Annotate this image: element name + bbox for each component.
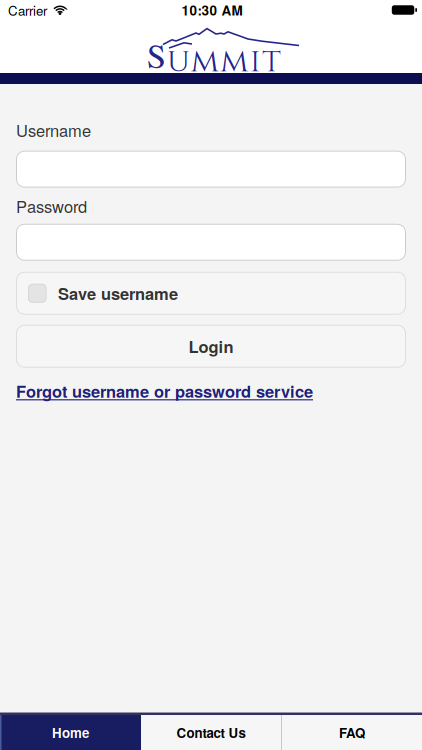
staticText: i — [250, 40, 261, 83]
button[interactable]: Home — [0, 715, 141, 750]
staticText: u — [167, 40, 189, 83]
staticText: 10:30 AM — [181, 0, 242, 20]
staticText: Username — [16, 118, 91, 142]
staticText: Password — [16, 194, 87, 218]
button[interactable]: Password — [16, 224, 406, 261]
staticText: t — [262, 40, 280, 83]
button[interactable]: Save username — [16, 272, 406, 315]
staticText: Home — [52, 723, 89, 742]
staticText: Carrier — [8, 0, 47, 19]
staticText: Forgot username or password service — [16, 379, 313, 403]
button[interactable]: Contact Us — [141, 715, 281, 750]
staticText: Contact Us — [176, 723, 245, 742]
button[interactable]: FAQ — [282, 715, 422, 750]
button[interactable]: Login — [16, 325, 406, 368]
staticText: Save username — [58, 281, 178, 305]
button[interactable]: Username — [16, 151, 406, 188]
staticText: FAQ — [339, 723, 365, 742]
staticText: m — [220, 40, 248, 83]
button[interactable]: Forgot username or password service — [16, 379, 313, 403]
staticText: S — [147, 32, 166, 78]
staticText: Login — [188, 334, 233, 358]
staticText: m — [191, 40, 219, 83]
